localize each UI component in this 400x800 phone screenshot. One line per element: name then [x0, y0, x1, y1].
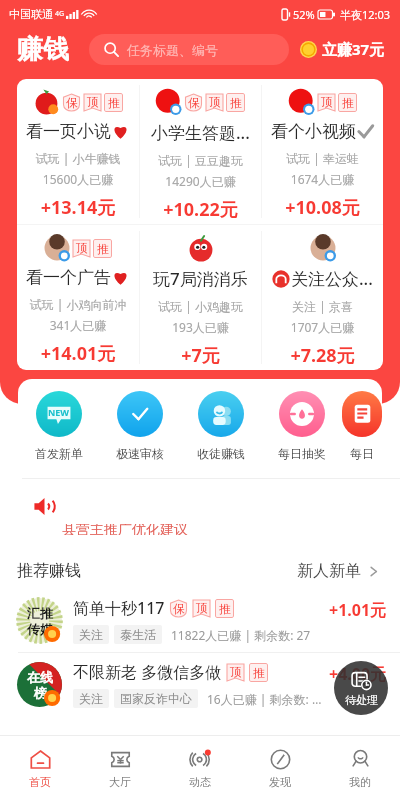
staticText: 关注 — [79, 627, 103, 642]
button[interactable]: 在线 — [17, 653, 387, 716]
staticText: 首页 — [29, 775, 51, 789]
staticText: 简单十秒117 — [73, 597, 165, 619]
staticText: 顶 — [321, 94, 333, 109]
staticText: 推荐赚钱 — [17, 561, 81, 581]
staticText: 193人已赚 — [140, 319, 261, 335]
staticText: 国家反诈中心 — [120, 691, 192, 706]
staticText: 推 — [108, 95, 120, 110]
button[interactable]: 每日 — [342, 379, 382, 461]
staticText: 发现 — [269, 775, 291, 789]
staticText: 关注 — [79, 691, 103, 706]
staticText: 4G — [55, 9, 65, 19]
staticText: +10.08元 — [262, 195, 383, 220]
staticText: 顶 — [209, 94, 221, 109]
staticText: 新人新单 — [297, 561, 361, 581]
staticText: +10.22元 — [140, 197, 261, 222]
staticText: 推 — [342, 95, 354, 110]
staticText: 保 — [173, 601, 185, 616]
staticText: 15600人已赚 — [17, 171, 139, 187]
button[interactable]: 保 — [17, 79, 139, 224]
staticText: 待处理 — [345, 693, 378, 707]
button[interactable]: 立赚37元 — [300, 39, 385, 59]
staticText: 顶 — [196, 600, 208, 615]
button[interactable]: 任务标题、编号 — [89, 34, 289, 65]
button[interactable]: 顶 — [17, 225, 139, 370]
staticText: +13.14元 — [17, 195, 139, 220]
staticText: 半夜12:03 — [340, 7, 391, 22]
staticText: 推 — [97, 241, 109, 256]
button[interactable]: 每日抽奖 — [261, 379, 342, 461]
staticText: +1.01元 — [329, 599, 387, 621]
staticText: 小学生答题... — [151, 121, 250, 144]
staticText: 县营主推广优化建议 — [62, 524, 188, 535]
staticText: 我的 — [349, 775, 371, 789]
staticText: 每日抽奖 — [278, 446, 326, 461]
button[interactable]: 顶 — [262, 79, 383, 224]
staticText: 试玩 | 小鸡趣玩 — [140, 298, 261, 314]
staticText: 顶 — [76, 240, 88, 255]
button[interactable]: 待处理 — [334, 661, 388, 715]
staticText: 看一页小说 — [26, 121, 111, 142]
staticText: 推 — [219, 601, 231, 616]
button[interactable]: 公告 — [0, 479, 400, 552]
staticText: 52% — [293, 7, 315, 22]
staticText: 保 — [66, 95, 78, 110]
staticText: 中国联通 — [9, 7, 53, 21]
button[interactable]: 汇推 — [17, 589, 387, 652]
staticText: 极速审核 — [116, 446, 164, 461]
staticText: 看一个广告 — [26, 267, 111, 288]
staticText: +14.01元 — [17, 341, 139, 366]
staticText: 试玩 | 小牛赚钱 — [17, 150, 139, 166]
staticText: 顶 — [87, 94, 99, 109]
staticText: 341人已赚 — [17, 317, 139, 333]
button[interactable]: 大厅 — [80, 736, 160, 800]
staticText: 榜 — [34, 685, 47, 701]
button[interactable]: 新人新单 — [297, 561, 380, 581]
staticText: 保 — [188, 95, 200, 110]
staticText: 泰生活 — [120, 627, 156, 642]
staticText: NEW — [48, 406, 70, 418]
staticText: 首发新单 — [35, 446, 83, 461]
button[interactable]: 发现 — [240, 736, 320, 800]
button[interactable]: 收徒赚钱 — [180, 379, 261, 461]
staticText: 推 — [253, 665, 265, 680]
staticText: 不限新老 多微信多做 — [73, 661, 222, 683]
staticText: 关注 | 京喜 — [262, 298, 383, 314]
staticText: 试玩 | 幸运蛙 — [262, 150, 383, 166]
staticText: 11822人已赚 | 剩余数: 27 — [171, 627, 311, 643]
button[interactable]: 赚钱 — [17, 33, 69, 66]
staticText: 每日 — [350, 446, 374, 461]
staticText: +7.28元 — [262, 343, 383, 368]
staticText: 收徒赚钱 — [197, 446, 245, 461]
staticText: 14290人已赚 — [140, 173, 261, 189]
staticText: 任务标题、编号 — [127, 42, 218, 58]
staticText: 赚钱 — [17, 33, 69, 66]
staticText: 关注公众... — [291, 267, 373, 290]
staticText: 玩7局消消乐 — [153, 267, 248, 290]
button[interactable]: 极速审核 — [99, 379, 180, 461]
staticText: 试玩 | 豆豆趣玩 — [140, 152, 261, 168]
staticText: 16人已赚 | 剩余数: 13 — [207, 691, 325, 707]
button[interactable]: 动态 — [160, 736, 240, 800]
staticText: 汇推 — [27, 605, 53, 621]
staticText: 传媒 — [27, 621, 53, 637]
button[interactable]: 玩7局消消乐 — [140, 225, 261, 370]
button[interactable]: NEW — [18, 379, 99, 461]
staticText: +4.00元 — [329, 663, 387, 685]
staticText: 推 — [230, 95, 242, 110]
staticText: 立赚37元 — [322, 39, 385, 59]
staticText: 看个小视频 — [271, 121, 356, 142]
other: 公告 — [34, 497, 55, 516]
button[interactable]: 保 — [140, 79, 261, 224]
button[interactable]: 首页 — [0, 736, 80, 800]
staticText: 顶 — [230, 664, 242, 679]
button[interactable]: 我的 — [320, 736, 400, 800]
staticText: 1707人已赚 — [262, 319, 383, 335]
staticText: 试玩 | 小鸡向前冲 — [17, 296, 139, 312]
staticText: 大厅 — [109, 775, 131, 789]
button[interactable]: 关注公众... — [262, 225, 383, 370]
staticText: 在线 — [27, 669, 53, 685]
staticText: 动态 — [189, 775, 211, 789]
staticText: +7元 — [140, 343, 261, 368]
staticText: 1674人已赚 — [262, 171, 383, 187]
